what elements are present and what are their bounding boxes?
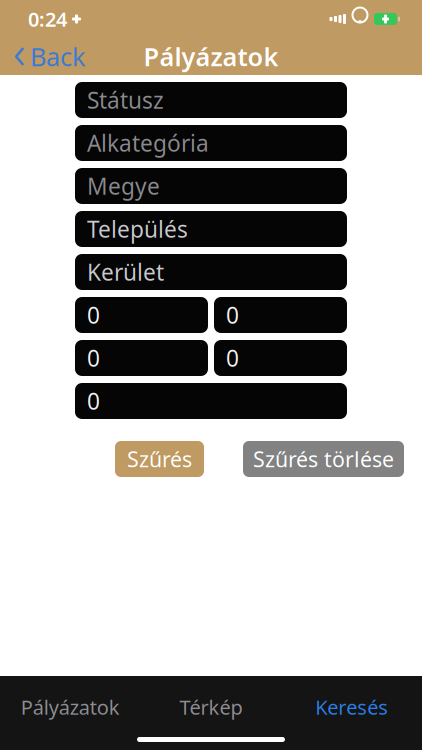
staticText: 0 <box>87 343 100 373</box>
staticText: Státusz <box>87 85 164 115</box>
staticText: Település <box>87 214 188 244</box>
button[interactable]: Szűrés <box>115 441 204 477</box>
staticText: Keresés <box>315 694 388 720</box>
staticText: 0 <box>87 300 100 330</box>
button[interactable]: Keresés <box>281 690 422 724</box>
button[interactable]: 0 <box>75 297 208 333</box>
staticText: Pályázatok <box>143 40 278 73</box>
button[interactable]: Megye <box>75 168 347 204</box>
button[interactable]: Település <box>75 211 347 247</box>
button[interactable]: Térkép <box>141 690 281 724</box>
button[interactable]: Kerület <box>75 254 347 290</box>
button[interactable]: Státusz <box>75 82 347 118</box>
button[interactable]: Alkategória <box>75 125 347 161</box>
staticText: Megye <box>87 171 160 201</box>
button[interactable]: Back <box>0 34 86 79</box>
staticText: 0 <box>226 343 239 373</box>
staticText: Back <box>30 40 86 73</box>
staticText: 0:24 <box>28 6 67 32</box>
staticText: Kerület <box>87 257 164 287</box>
staticText: Pályázatok <box>21 694 120 720</box>
button[interactable]: Szűrés törlése <box>243 441 404 477</box>
button[interactable]: 0 <box>214 297 347 333</box>
staticText: 0 <box>87 386 100 416</box>
button[interactable]: 0 <box>75 340 208 376</box>
button[interactable]: 0 <box>75 383 347 419</box>
button[interactable]: 0 <box>214 340 347 376</box>
staticText: Térkép <box>179 694 242 720</box>
staticText: Szűrés <box>127 445 192 473</box>
staticText: Szűrés törlése <box>253 445 394 473</box>
staticText: Alkategória <box>87 128 209 158</box>
staticText: 0 <box>226 300 239 330</box>
button[interactable]: Pályázatok <box>0 690 141 724</box>
